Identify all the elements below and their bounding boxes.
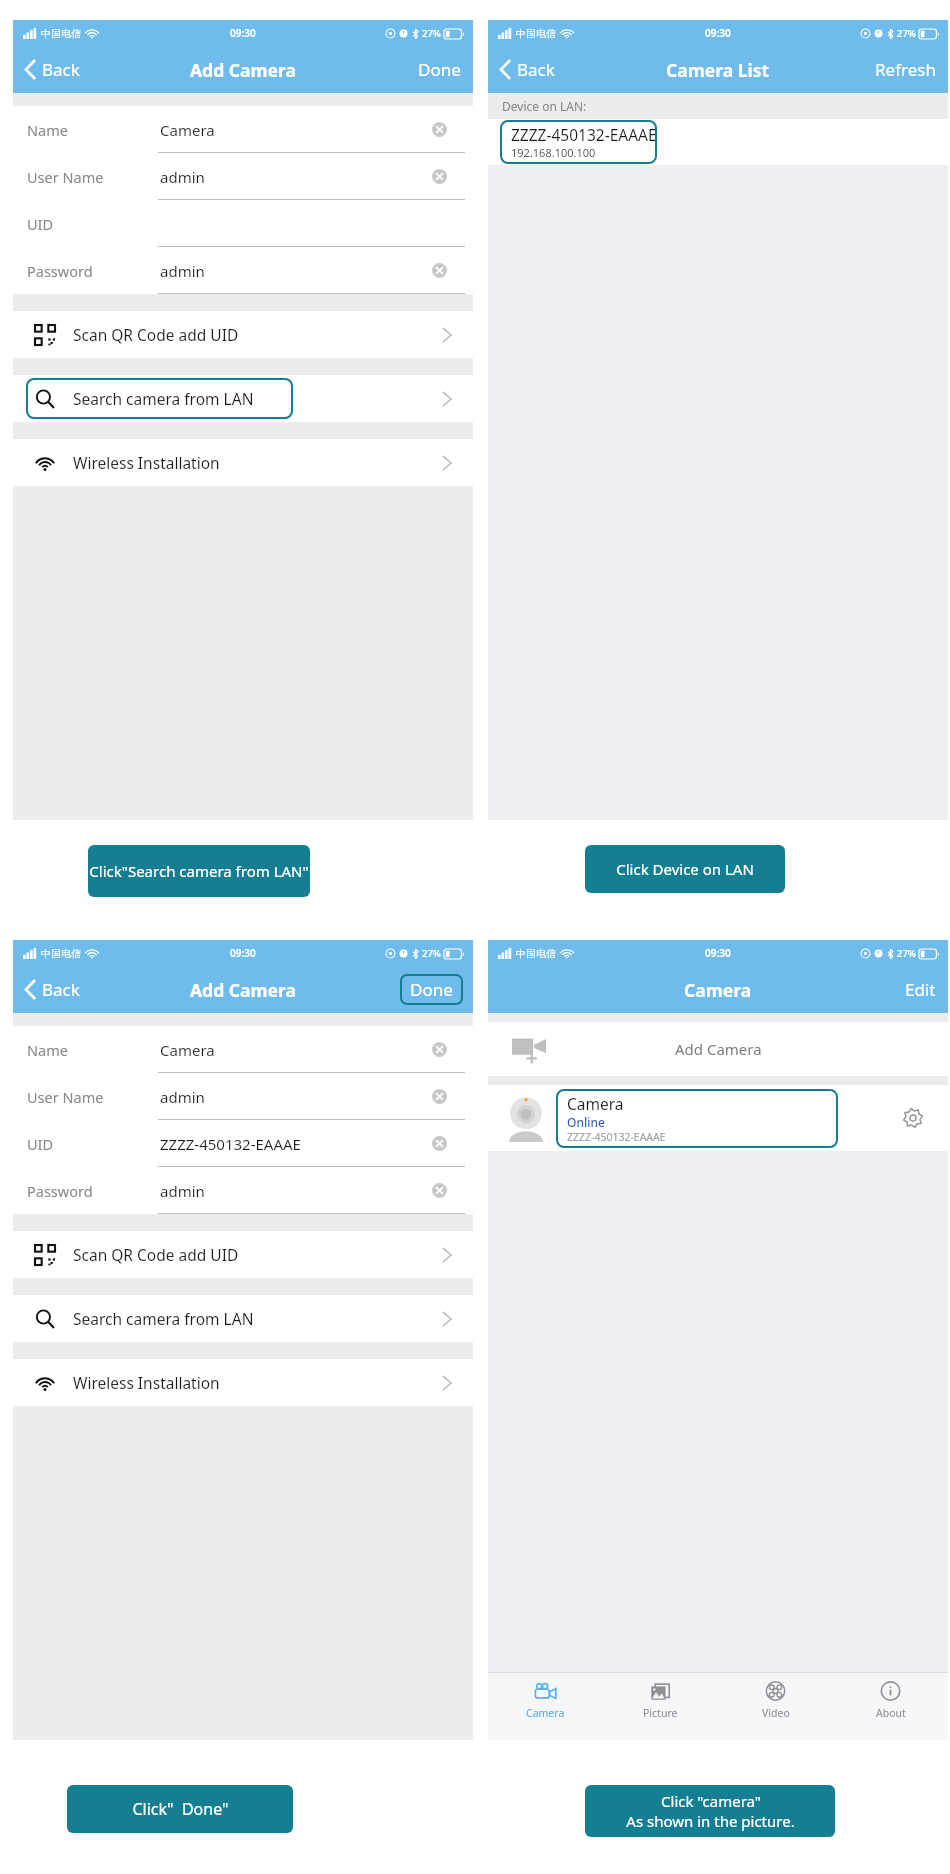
staticText: Scan QR Code add UID [73,1244,239,1265]
staticText: 09:30 [705,26,731,40]
staticText: Camera [160,120,215,140]
staticText: ZZZZ-450132-EAAAE [567,1130,666,1144]
button[interactable]: Search camera from LAN [26,378,293,419]
staticText: Click"Search camera from LAN" [89,861,309,881]
button[interactable]: Wireless Installation [26,439,473,486]
staticText: Done [418,58,461,81]
staticText: Video [762,1706,790,1720]
button[interactable]: Back [13,966,90,1013]
staticText: 192.168.100.100 [511,145,596,160]
staticText: User Name [27,167,104,187]
staticText: Back [517,58,555,81]
staticText: ZZZZ-450132-EAAAE [511,124,657,145]
staticText: UID [27,1134,54,1154]
button[interactable]: Camera [488,1672,603,1728]
staticText: Wireless Installation [73,452,220,473]
staticText: 27% [897,947,916,960]
button[interactable]: Click" Done" [67,1785,293,1833]
staticText: Click" Done" [132,1798,229,1820]
button[interactable]: Search camera from LAN [26,1295,473,1342]
staticText: Name [27,120,68,140]
button[interactable]: User Name [13,153,473,200]
staticText: As shown in the picture. [626,1811,795,1831]
button[interactable]: Wireless Installation [26,1359,473,1406]
staticText: Click "camera" [661,1791,761,1811]
staticText: Done [410,978,453,1001]
button[interactable]: Done [410,978,453,1001]
staticText: 09:30 [230,946,256,960]
staticText: Add Camera [675,1039,762,1059]
button[interactable]: Scan QR Code add UID [26,311,473,358]
staticText: Camera [160,1040,215,1060]
button[interactable]: ZZZZ-450132-EAAAE [488,119,948,165]
staticText: Picture [643,1706,678,1720]
staticText: Device on LAN: [502,98,587,114]
staticText: Password [27,261,93,281]
button[interactable]: About [833,1672,948,1728]
button[interactable]: Click"Search camera from LAN" [88,845,310,897]
staticText: Password [27,1181,93,1201]
staticText: 27% [897,27,916,40]
staticText: Edit [905,978,936,1001]
button[interactable]: Refresh [875,58,936,81]
staticText: About [876,1706,906,1720]
button[interactable]: Scan QR Code add UID [26,1231,473,1278]
button[interactable]: Name [13,106,473,153]
staticText: Wireless Installation [73,1372,220,1393]
staticText: UID [27,214,54,234]
staticText: 09:30 [705,946,731,960]
staticText: User Name [27,1087,104,1107]
button[interactable]: Done [418,58,461,81]
button[interactable]: UID [13,1120,473,1167]
staticText: Click Device on LAN [616,859,754,879]
staticText: 27% [422,947,441,960]
staticText: admin [160,1181,205,1201]
staticText: Back [42,978,80,1001]
button[interactable]: Video [718,1672,833,1728]
button[interactable]: Name [13,1026,473,1073]
button[interactable]: UID [13,200,473,247]
staticText: Add Camera [190,978,296,1002]
staticText: Scan QR Code add UID [73,324,239,345]
staticText: 中国电信 [516,947,556,960]
staticText: 中国电信 [41,27,81,40]
staticText: Name [27,1040,68,1060]
button[interactable]: Picture [603,1672,718,1728]
staticText: Search camera from LAN [73,388,254,409]
button[interactable]: Click "camera" [585,1785,835,1837]
staticText: admin [160,1087,205,1107]
staticText: Refresh [875,58,936,81]
button[interactable]: Camera [488,1085,948,1151]
staticText: admin [160,167,205,187]
staticText: Back [42,58,80,81]
staticText: admin [160,261,205,281]
button[interactable]: Back [13,46,90,93]
button[interactable]: Password [13,1167,473,1214]
button[interactable]: Settings [898,1103,928,1133]
staticText: ZZZZ-450132-EAAAE [160,1134,301,1154]
staticText: Online [567,1114,605,1130]
staticText: Search camera from LAN [73,1308,254,1329]
staticText: 中国电信 [516,27,556,40]
staticText: Camera [684,978,752,1002]
staticText: 27% [422,27,441,40]
button[interactable]: Add Camera [488,1022,948,1076]
button[interactable]: Password [13,247,473,294]
staticText: 中国电信 [41,947,81,960]
staticText: Camera [567,1093,624,1114]
staticText: Camera List [666,58,770,82]
staticText: 09:30 [230,26,256,40]
button[interactable]: Click Device on LAN [585,845,785,893]
button[interactable]: Edit [905,978,936,1001]
staticText: Add Camera [190,58,296,82]
button[interactable]: Back [488,46,565,93]
staticText: Camera [526,1706,565,1720]
button[interactable]: User Name [13,1073,473,1120]
